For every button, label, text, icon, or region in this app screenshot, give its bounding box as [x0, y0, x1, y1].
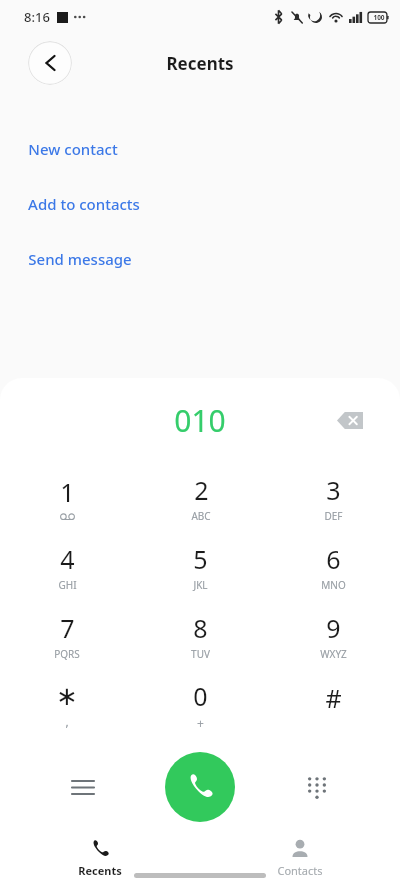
staticText: +: [197, 715, 204, 731]
button[interactable]: 1: [0, 463, 134, 532]
staticText: 6: [326, 542, 341, 576]
button[interactable]: 6: [267, 532, 400, 601]
staticText: WXYZ: [320, 647, 347, 661]
staticText: Send message: [28, 249, 132, 269]
button[interactable]: Back: [28, 41, 72, 85]
staticText: PQRS: [54, 647, 80, 661]
button[interactable]: 8: [134, 601, 267, 670]
button[interactable]: 4: [0, 532, 134, 601]
staticText: 8:16: [24, 8, 50, 26]
button[interactable]: Keypad: [295, 765, 339, 809]
staticText: 100: [373, 13, 385, 22]
staticText: 0: [193, 679, 208, 713]
button[interactable]: Send message: [0, 248, 400, 270]
button[interactable]: Contacts: [200, 827, 400, 889]
staticText: 1: [60, 475, 75, 509]
button[interactable]: #: [267, 670, 400, 739]
staticText: 3: [326, 473, 341, 507]
staticText: Recents: [78, 863, 122, 878]
staticText: 010: [174, 400, 226, 441]
button[interactable]: 5: [134, 532, 267, 601]
staticText: JKL: [193, 578, 208, 592]
button[interactable]: ∗: [0, 670, 134, 739]
button[interactable]: 3: [267, 463, 400, 532]
button[interactable]: Recents: [0, 827, 200, 889]
button[interactable]: Backspace: [328, 398, 372, 442]
staticText: Recents: [166, 52, 234, 75]
staticText: 9: [326, 611, 341, 645]
button[interactable]: 7: [0, 601, 134, 670]
button[interactable]: 0: [134, 670, 267, 739]
button[interactable]: New contact: [0, 138, 400, 160]
staticText: #: [325, 681, 342, 715]
staticText: DEF: [324, 509, 343, 523]
staticText: Add to contacts: [28, 194, 140, 214]
button[interactable]: Add to contacts: [0, 193, 400, 215]
staticText: 7: [60, 611, 75, 645]
button[interactable]: 2: [134, 463, 267, 532]
staticText: GHI: [58, 578, 77, 592]
staticText: 5: [193, 542, 208, 576]
staticText: ∗: [56, 681, 78, 711]
staticText: Contacts: [277, 863, 323, 878]
staticText: MNO: [321, 578, 346, 592]
button[interactable]: Dial options: [61, 765, 105, 809]
staticText: ,: [65, 713, 69, 729]
button[interactable]: Call: [165, 752, 235, 822]
button[interactable]: 9: [267, 601, 400, 670]
staticText: ABC: [191, 509, 211, 523]
staticText: 2: [194, 473, 209, 507]
staticText: New contact: [28, 139, 118, 159]
staticText: TUV: [191, 647, 210, 661]
staticText: 4: [60, 542, 75, 576]
staticText: 8: [193, 611, 208, 645]
